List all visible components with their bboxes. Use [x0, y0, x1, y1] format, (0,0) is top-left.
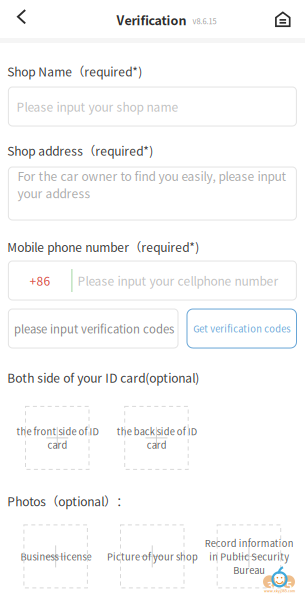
staticText: 3 — [267, 577, 273, 593]
staticText: Mobile phone number（required*) — [7, 238, 199, 255]
staticText: Verification — [116, 11, 186, 29]
staticText: please input verification codes — [14, 320, 174, 337]
staticText: v8.6.15 — [192, 16, 216, 26]
button[interactable]: Home — [267, 3, 299, 35]
staticText: Record information in Public Security Bu… — [204, 536, 293, 577]
staticText: Please input your shop name — [16, 98, 178, 115]
staticText: +86 — [29, 272, 50, 289]
staticText: Shop address（required*) — [7, 142, 153, 159]
staticText: www.xkyj365.com — [264, 588, 295, 593]
staticText: Picture of your shop — [107, 550, 198, 563]
button[interactable]: Picture of your shop — [120, 525, 184, 588]
staticText: Shop Name（required*) — [7, 62, 142, 80]
staticText: Both side of your ID card(optional) — [7, 369, 199, 386]
button[interactable]: For the car owner to find you easily, pl… — [8, 167, 296, 220]
staticText: Photos（optional）： — [7, 492, 128, 510]
button[interactable]: +86 — [8, 261, 296, 300]
staticText: the back side of ID card — [116, 424, 196, 451]
button[interactable]: Please input your shop name — [8, 87, 296, 126]
staticText: Please input your cellphone number — [77, 272, 278, 289]
button[interactable]: Record information in Public Security Bu… — [217, 525, 281, 588]
button[interactable]: the front side of ID card — [25, 406, 89, 469]
button[interactable]: Business license — [24, 525, 87, 588]
button[interactable]: Get verification codes — [187, 309, 296, 348]
staticText: the front side of ID card — [16, 424, 98, 451]
button[interactable]: the back side of ID card — [125, 406, 188, 469]
staticText: For the car owner to find you easily, pl… — [17, 167, 286, 202]
staticText: Get verification codes — [193, 322, 290, 335]
button[interactable]: Back — [9, 1, 34, 32]
staticText: Business license — [20, 550, 91, 563]
button[interactable]: please input verification codes — [8, 309, 178, 348]
staticText: 5 — [286, 577, 292, 593]
